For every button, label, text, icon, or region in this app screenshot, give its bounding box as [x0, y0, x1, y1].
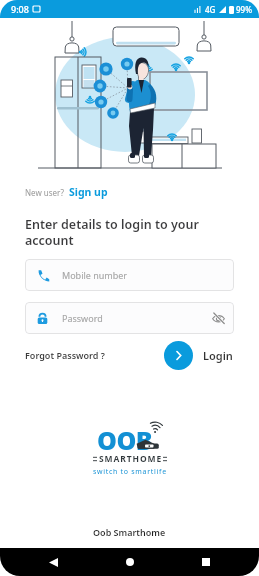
button[interactable]: Sign up [69, 185, 108, 199]
staticText: 99% [236, 4, 252, 15]
button[interactable]: Forgot Password ? [25, 349, 105, 361]
staticText: 4G [205, 4, 216, 15]
button[interactable]: Back [42, 551, 64, 573]
staticText: Password [62, 312, 103, 324]
staticText: Mobile number [62, 269, 128, 281]
staticText: 9:08 [11, 3, 29, 15]
staticText: OOB [97, 423, 153, 453]
staticText: SMARTHOME [99, 453, 163, 465]
staticText: Oob Smarthome [93, 526, 166, 538]
button[interactable]: Recent apps [195, 551, 217, 573]
button[interactable]: Home [119, 551, 141, 573]
staticText: Enter details to login to your account [25, 216, 229, 249]
staticText: Forgot Password ? [25, 349, 105, 361]
staticText: switch to smartlife [93, 467, 167, 477]
staticText: New user? [25, 187, 64, 198]
button[interactable]: Mobile number [25, 259, 234, 291]
button[interactable]: Login [164, 341, 233, 370]
staticText: Login [203, 348, 233, 363]
button[interactable]: Show password [205, 305, 231, 331]
staticText: Sign up [69, 185, 108, 199]
button[interactable]: Password [25, 302, 234, 334]
